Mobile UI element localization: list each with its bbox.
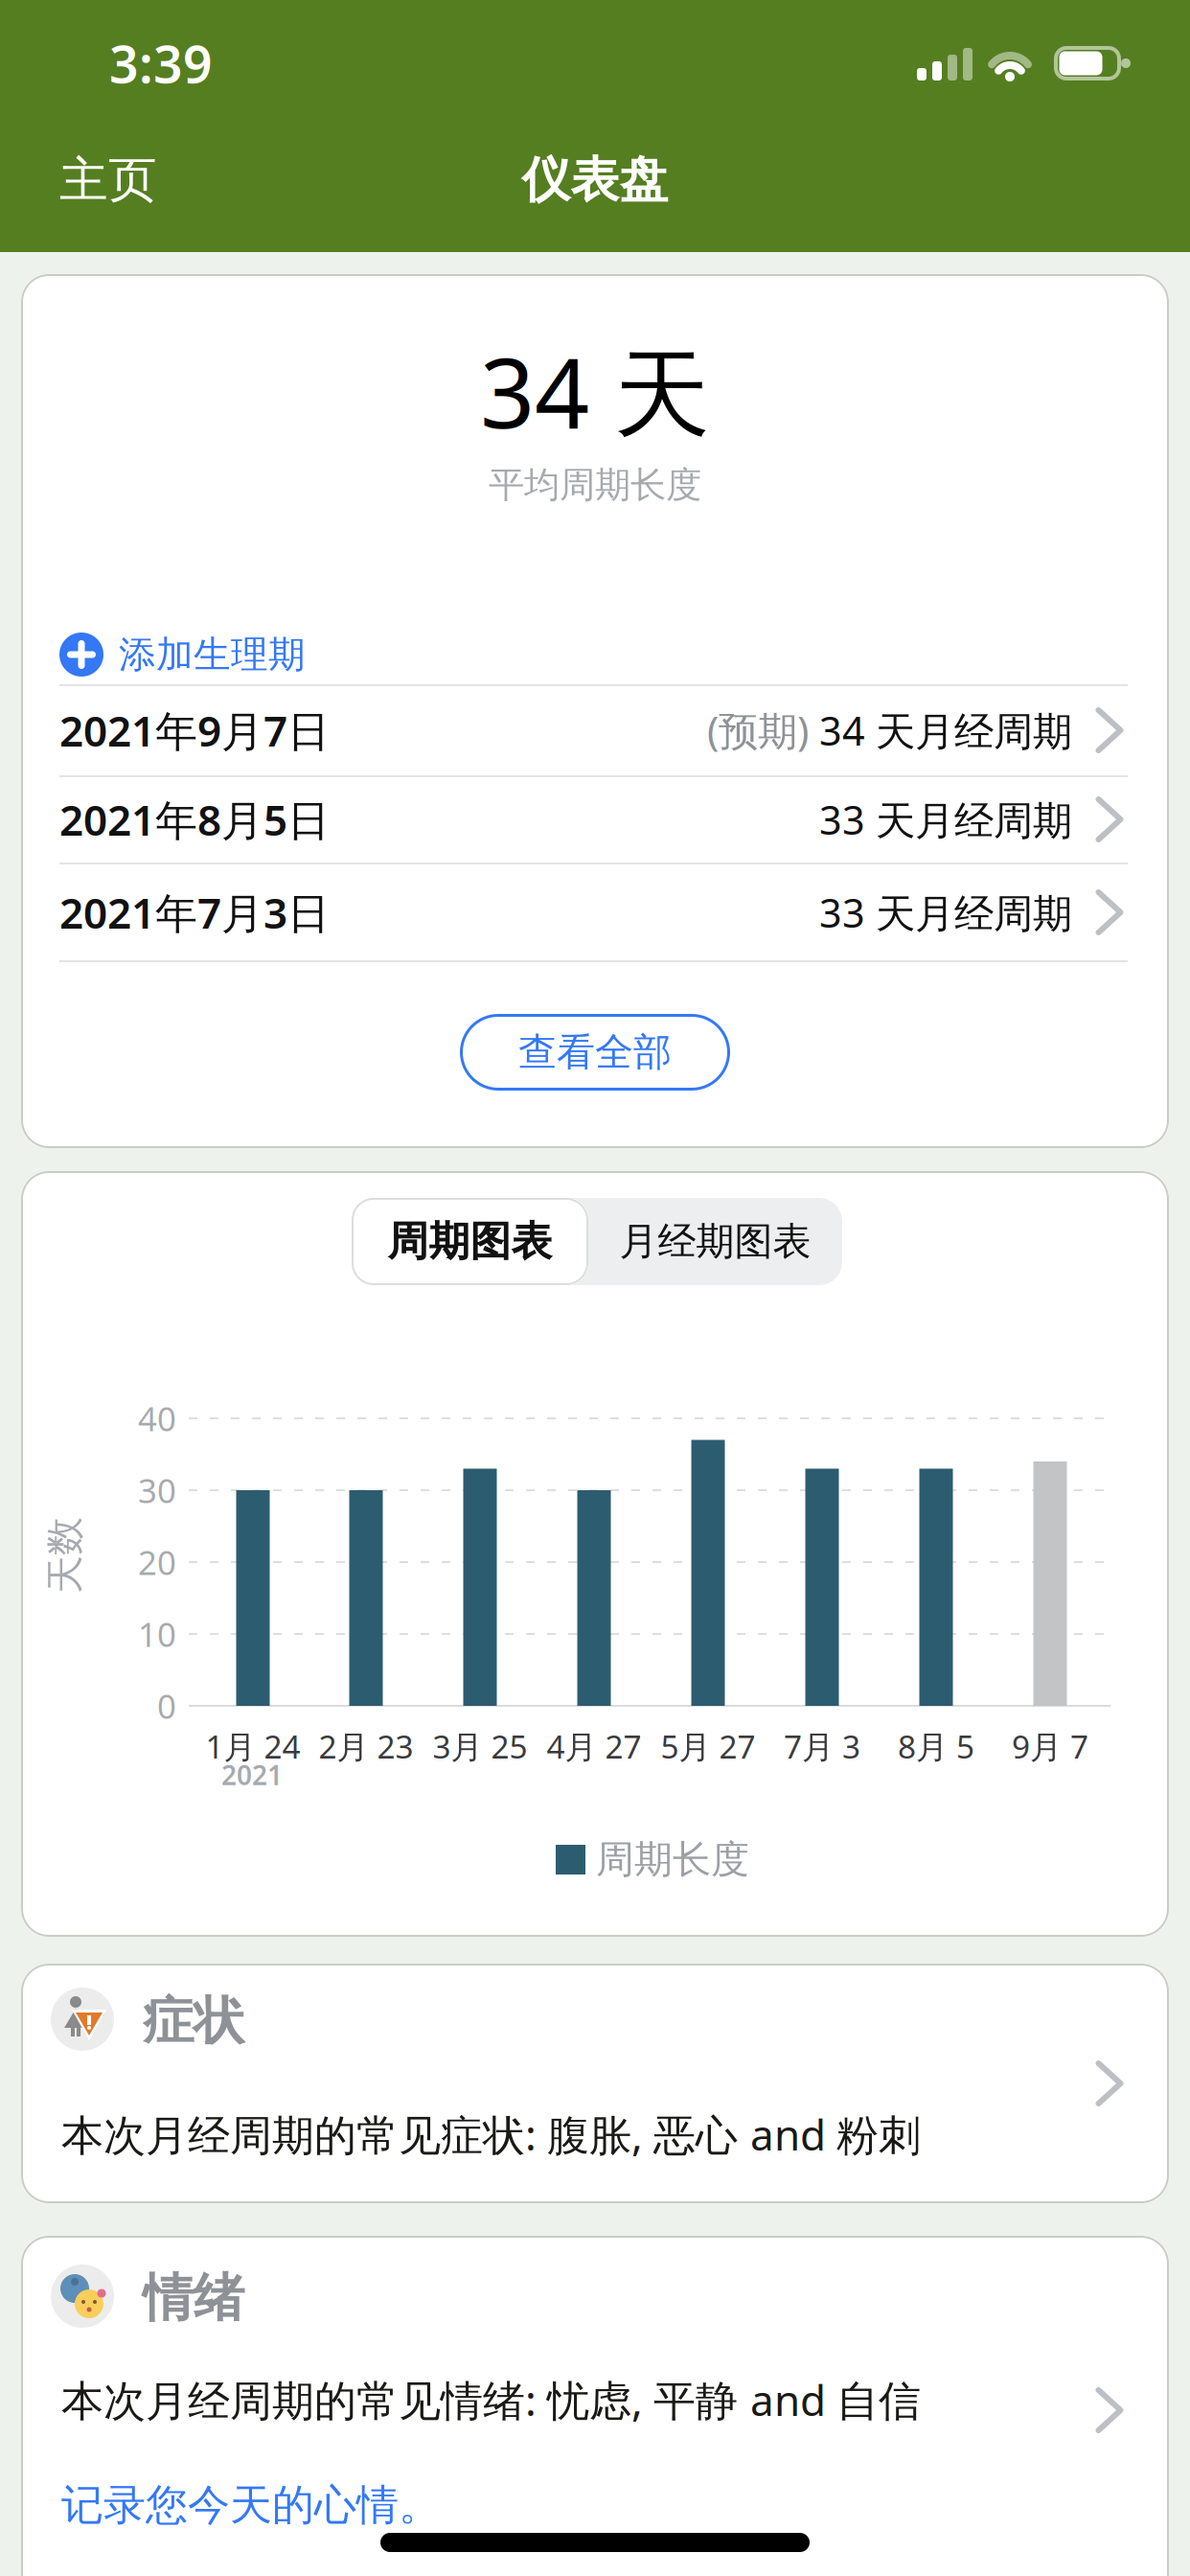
- staticText: 添加生理期: [119, 632, 306, 677]
- staticText: 20: [138, 1540, 176, 1584]
- staticText: 40: [138, 1396, 176, 1440]
- staticText: 仪表盘: [522, 150, 668, 210]
- button[interactable]: 症状: [21, 1964, 1169, 2203]
- staticText: 33 天月经周期: [819, 793, 1072, 846]
- staticText: 本次月经周期的常见症状: 腹胀, 恶心 and 粉刺: [61, 2106, 921, 2162]
- staticText: 主页: [59, 150, 157, 210]
- staticText: 2021年8月5日: [59, 791, 330, 847]
- staticText: (预期): [707, 704, 819, 757]
- button[interactable]: 查看全部: [460, 1014, 730, 1091]
- button[interactable]: 情绪: [21, 2236, 1169, 2576]
- staticText: 3:39: [109, 29, 213, 97]
- staticText: 记录您今天的心情。: [61, 2479, 441, 2531]
- staticText: 情绪: [143, 2267, 244, 2329]
- staticText: 34 天: [480, 327, 710, 455]
- staticText: 症状: [143, 1990, 244, 2052]
- staticText: 1月 24: [206, 1725, 300, 1767]
- button[interactable]: 主页: [59, 150, 157, 210]
- staticText: 查看全部: [518, 1029, 672, 1076]
- staticText: 34 天月经周期: [819, 704, 1072, 757]
- staticText: 周期图表: [388, 1216, 552, 1267]
- staticText: 4月 27: [547, 1725, 641, 1767]
- staticText: 2021年9月7日: [59, 702, 330, 758]
- staticText: 7月 3: [784, 1725, 860, 1767]
- button[interactable]: 2021年8月5日: [21, 775, 1169, 863]
- staticText: 0: [157, 1684, 176, 1728]
- staticText: 周期长度: [596, 1836, 749, 1883]
- staticText: 30: [138, 1468, 176, 1512]
- button[interactable]: 2021年9月7日: [21, 686, 1169, 774]
- staticText: 33 天月经周期: [819, 886, 1072, 939]
- staticText: 2021年7月3日: [59, 884, 330, 940]
- button[interactable]: 周期图表: [352, 1198, 588, 1285]
- staticText: 2021: [221, 1757, 283, 1793]
- staticText: 5月 27: [661, 1725, 755, 1767]
- staticText: 平均周期长度: [489, 463, 701, 507]
- staticText: 本次月经周期的常见情绪: 忧虑, 平静 and 自信: [61, 2372, 921, 2428]
- staticText: 8月 5: [898, 1725, 974, 1767]
- button[interactable]: 月经期图表: [588, 1198, 842, 1285]
- staticText: 月经期图表: [619, 1218, 811, 1265]
- button[interactable]: 2021年7月3日: [21, 868, 1169, 956]
- staticText: 2月 23: [319, 1725, 413, 1767]
- staticText: 天数: [27, 1532, 103, 1579]
- button[interactable]: 添加生理期: [59, 610, 538, 699]
- staticText: 9月 7: [1012, 1725, 1088, 1767]
- staticText: 3月 25: [433, 1725, 527, 1767]
- staticText: 10: [138, 1612, 176, 1656]
